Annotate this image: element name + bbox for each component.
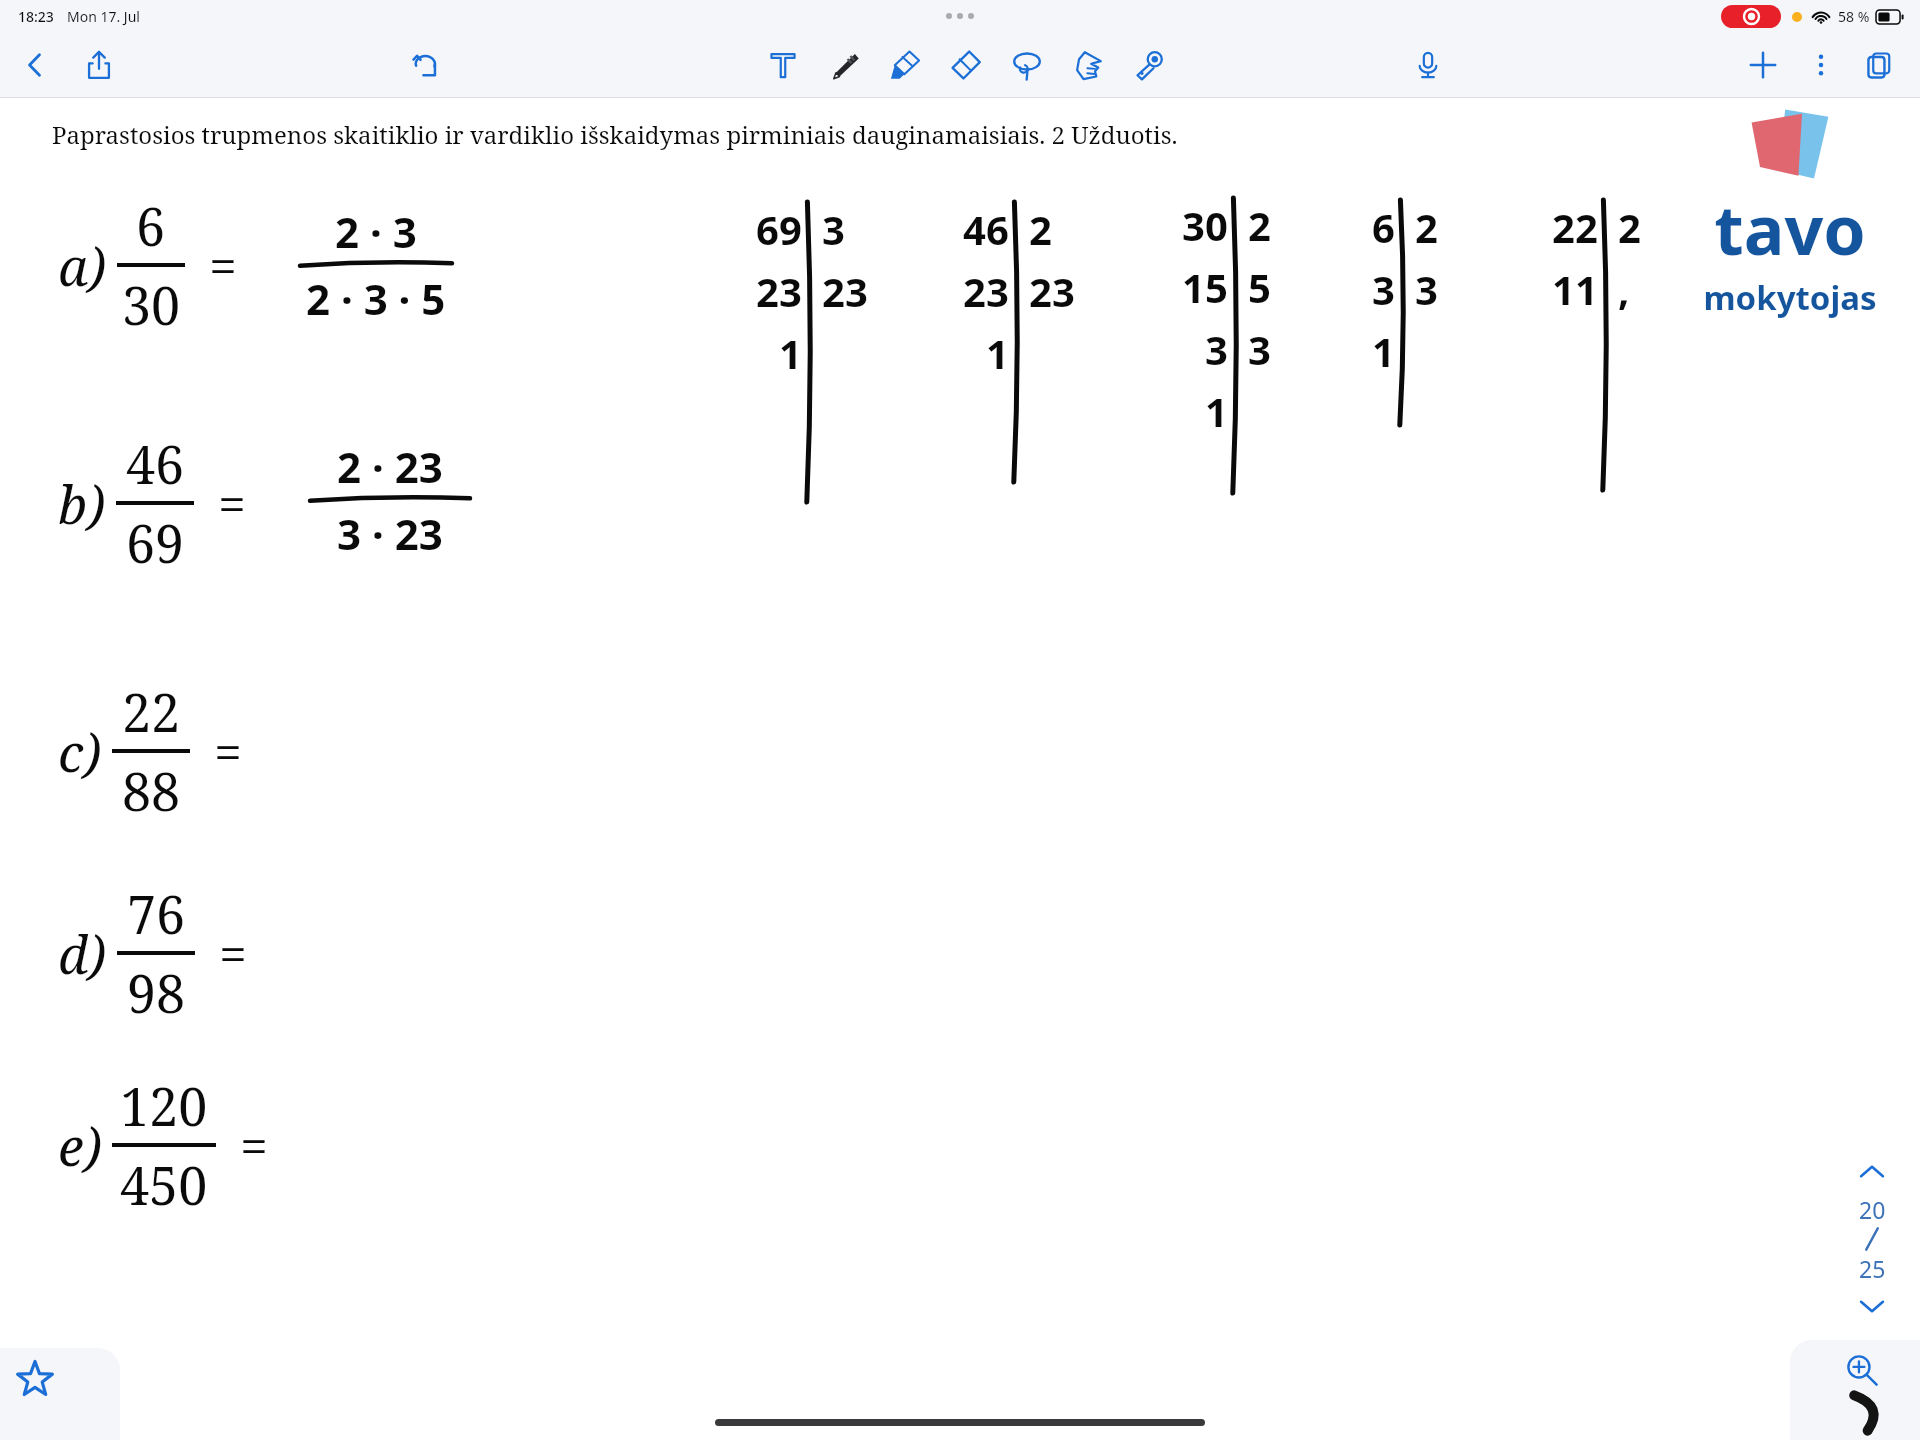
button[interactable]: Zoom in xyxy=(1838,1346,1886,1394)
staticText: 46 xyxy=(126,428,185,499)
button[interactable]: Next page xyxy=(1850,1284,1894,1328)
button[interactable]: Text tool xyxy=(760,42,806,88)
staticText: 30 xyxy=(122,269,181,340)
staticText: 2 xyxy=(1248,198,1271,252)
staticText: 18:23 xyxy=(18,7,54,26)
button[interactable]: Previous page xyxy=(1850,1150,1894,1194)
staticText: tavo xyxy=(1714,182,1866,275)
button[interactable]: Highlighter xyxy=(882,42,928,88)
staticText: 2 xyxy=(1415,200,1438,254)
staticText: 2 · 3 xyxy=(335,203,417,260)
staticText: 2 · 23 xyxy=(337,438,443,495)
staticText: 120 xyxy=(120,1070,208,1141)
button[interactable]: Add xyxy=(1740,42,1786,88)
staticText: 2 xyxy=(1618,200,1641,254)
staticText: 3 · 23 xyxy=(337,505,443,562)
staticText: 1 xyxy=(986,326,1009,380)
button[interactable]: Lasso xyxy=(1004,42,1050,88)
staticText: 46 xyxy=(963,202,1009,256)
staticText: 25 xyxy=(1859,1253,1886,1284)
staticText: 23 xyxy=(822,264,868,318)
staticText: d) xyxy=(58,918,107,989)
staticText: 3 xyxy=(1372,262,1395,316)
staticText: 69 xyxy=(756,202,802,256)
button[interactable]: Undo xyxy=(403,42,449,88)
button[interactable]: More options xyxy=(1798,42,1844,88)
staticText: 69 xyxy=(126,507,185,578)
button[interactable]: Laser pointer xyxy=(1126,42,1172,88)
staticText: 2 xyxy=(1029,202,1052,256)
button[interactable]: Pen xyxy=(821,42,867,88)
staticText: mokytojas xyxy=(1703,275,1877,320)
staticText: 3 xyxy=(822,202,845,256)
staticText: 30 xyxy=(1182,198,1228,252)
staticText: 1 xyxy=(779,326,802,380)
staticText: 58 % xyxy=(1838,7,1870,26)
staticText: 6 xyxy=(136,190,166,261)
staticText: 3 xyxy=(1205,322,1228,376)
staticText: = xyxy=(214,717,242,785)
staticText: c) xyxy=(58,716,102,787)
staticText: 88 xyxy=(122,755,181,826)
staticText: 2 · 3 · 5 xyxy=(306,270,446,327)
staticText: a) xyxy=(58,230,107,301)
button[interactable]: Share xyxy=(76,42,122,88)
staticText: = xyxy=(219,919,247,987)
button[interactable]: Hand xyxy=(1065,42,1111,88)
staticText: 1 xyxy=(1372,324,1395,378)
staticText: e) xyxy=(58,1110,102,1181)
button[interactable]: Bookmark xyxy=(0,1348,120,1440)
staticText: = xyxy=(209,231,237,299)
staticText: 22 xyxy=(122,676,181,747)
button[interactable]: Back xyxy=(12,42,58,88)
staticText: 5 xyxy=(1248,260,1271,314)
staticText: 3 xyxy=(1415,262,1438,316)
staticText: 450 xyxy=(120,1149,208,1220)
button[interactable]: Pages xyxy=(1856,42,1902,88)
staticText: 98 xyxy=(127,957,186,1028)
staticText: 6 xyxy=(1372,200,1395,254)
staticText: 20 xyxy=(1859,1194,1886,1225)
staticText: 22 xyxy=(1552,200,1598,254)
staticText: = xyxy=(240,1111,268,1179)
staticText: b) xyxy=(58,468,106,539)
staticText: 15 xyxy=(1182,260,1228,314)
staticText: = xyxy=(218,469,246,537)
staticText: 11 xyxy=(1552,262,1598,316)
button[interactable]: Eraser xyxy=(943,42,989,88)
staticText: 3 xyxy=(1248,322,1271,376)
staticText: 23 xyxy=(1029,264,1075,318)
staticText: Mon 17. Jul xyxy=(67,7,140,26)
staticText: 76 xyxy=(127,878,186,949)
staticText: 23 xyxy=(756,264,802,318)
staticText: 1 xyxy=(1205,384,1228,438)
staticText: 23 xyxy=(963,264,1009,318)
button[interactable]: Microphone xyxy=(1405,42,1451,88)
staticText: Paprastosios trupmenos skaitiklio ir var… xyxy=(52,118,1178,151)
staticText: , xyxy=(1618,262,1630,316)
